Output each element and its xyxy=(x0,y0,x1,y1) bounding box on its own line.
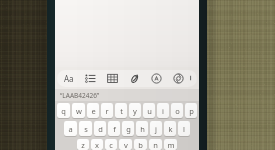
button[interactable]: t xyxy=(115,103,127,118)
staticText: “LAAB42426” xyxy=(60,91,100,100)
staticText: u xyxy=(147,106,152,116)
button[interactable]: i xyxy=(157,103,169,118)
button[interactable]: “LAAB42426” xyxy=(55,89,199,101)
staticText: n xyxy=(153,140,158,150)
button[interactable]: c xyxy=(105,139,117,150)
button[interactable]: x xyxy=(91,139,103,150)
button[interactable] xyxy=(55,0,199,67)
staticText: q xyxy=(61,106,66,116)
staticText: y xyxy=(133,106,137,116)
button[interactable]: a xyxy=(64,121,77,136)
staticText: m xyxy=(167,140,175,150)
staticText: t xyxy=(120,106,123,116)
staticText: j xyxy=(155,124,157,134)
button[interactable]: More xyxy=(189,70,197,87)
button[interactable]: Table xyxy=(101,70,123,87)
button[interactable]: f xyxy=(108,121,120,136)
staticText: b xyxy=(138,140,143,150)
button[interactable]: q xyxy=(57,103,70,118)
button[interactable]: u xyxy=(143,103,155,118)
staticText: g xyxy=(126,124,131,134)
staticText: c xyxy=(109,140,113,150)
button[interactable]: v xyxy=(119,139,132,150)
button[interactable]: n xyxy=(149,139,162,150)
staticText: x xyxy=(95,140,99,150)
button[interactable]: s xyxy=(79,121,92,136)
staticText: d xyxy=(98,124,103,134)
staticText: z xyxy=(81,140,85,150)
button[interactable]: r xyxy=(101,103,113,118)
staticText: k xyxy=(168,124,173,134)
button[interactable]: w xyxy=(72,103,85,118)
staticText: p xyxy=(189,106,194,116)
button[interactable]: Markup xyxy=(145,70,167,87)
button[interactable]: Text format xyxy=(57,70,79,87)
button[interactable]: l xyxy=(178,121,190,136)
staticText: s xyxy=(84,124,88,134)
button[interactable]: Camera xyxy=(167,70,189,87)
staticText: o xyxy=(175,106,180,116)
staticText: r xyxy=(105,106,109,116)
button[interactable]: p xyxy=(185,103,197,118)
staticText: i xyxy=(162,106,164,116)
button[interactable]: z xyxy=(77,139,89,150)
button[interactable]: y xyxy=(129,103,141,118)
button[interactable]: j xyxy=(150,121,162,136)
staticText: l xyxy=(183,124,185,134)
staticText: h xyxy=(140,124,145,134)
button[interactable]: Checklist xyxy=(79,70,101,87)
button[interactable]: h xyxy=(136,121,148,136)
button[interactable]: m xyxy=(164,139,177,150)
button[interactable]: g xyxy=(122,121,134,136)
staticText: f xyxy=(113,124,116,134)
staticText: v xyxy=(124,140,128,150)
button[interactable]: Attach file xyxy=(123,70,145,87)
staticText: e xyxy=(91,106,96,116)
staticText: a xyxy=(68,124,73,134)
button[interactable]: d xyxy=(94,121,106,136)
button[interactable]: k xyxy=(164,121,176,136)
staticText: w xyxy=(76,106,82,116)
button[interactable]: e xyxy=(87,103,99,118)
staticText: Aa xyxy=(64,73,74,84)
button[interactable]: o xyxy=(171,103,183,118)
button[interactable]: b xyxy=(134,139,147,150)
